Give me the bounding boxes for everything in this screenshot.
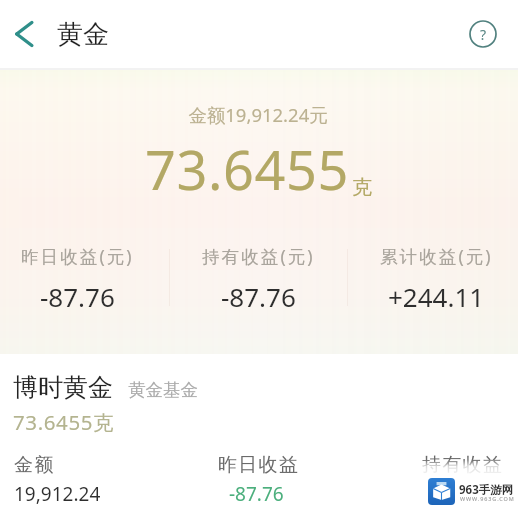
staticText: 黄金基金	[128, 379, 198, 401]
button[interactable]: 博时黄金	[0, 354, 518, 507]
staticText: 19,912.24	[14, 481, 101, 507]
button[interactable]: 金额	[14, 453, 194, 507]
staticText: -87.76	[229, 481, 284, 507]
staticText: 963手游网	[459, 482, 514, 498]
button[interactable]: Help	[463, 14, 503, 54]
staticText: 73.6455克	[13, 408, 115, 436]
staticText: +244.11	[433, 481, 504, 507]
staticText: 累计收益(元)	[380, 244, 493, 268]
button[interactable]: 持有收益(元)	[183, 244, 333, 314]
button[interactable]: 昨日收益	[218, 453, 398, 507]
staticText: 黄金	[57, 18, 109, 51]
staticText: 博时黄金	[13, 372, 113, 403]
button[interactable]: 累计收益(元)	[361, 244, 511, 314]
staticText: 金额	[14, 453, 55, 477]
button[interactable]: Back	[7, 17, 41, 51]
staticText: 昨日收益	[218, 453, 300, 477]
staticText: 持有收益	[422, 453, 504, 477]
staticText: 持有收益(元)	[202, 244, 315, 268]
staticText: -87.76	[40, 279, 115, 314]
staticText: ?	[480, 25, 487, 44]
staticText: +244.11	[388, 279, 485, 314]
staticText: -87.76	[221, 279, 296, 314]
staticText: 昨日收益(元)	[21, 244, 134, 268]
staticText: 金额19,912.24元	[0, 102, 517, 127]
button[interactable]: 持有收益	[422, 453, 518, 507]
staticText: WWW.963G.COM	[460, 495, 515, 502]
staticText: 克	[352, 175, 372, 200]
button[interactable]: 昨日收益(元)	[2, 244, 152, 314]
staticText: 73.6455	[145, 132, 349, 206]
